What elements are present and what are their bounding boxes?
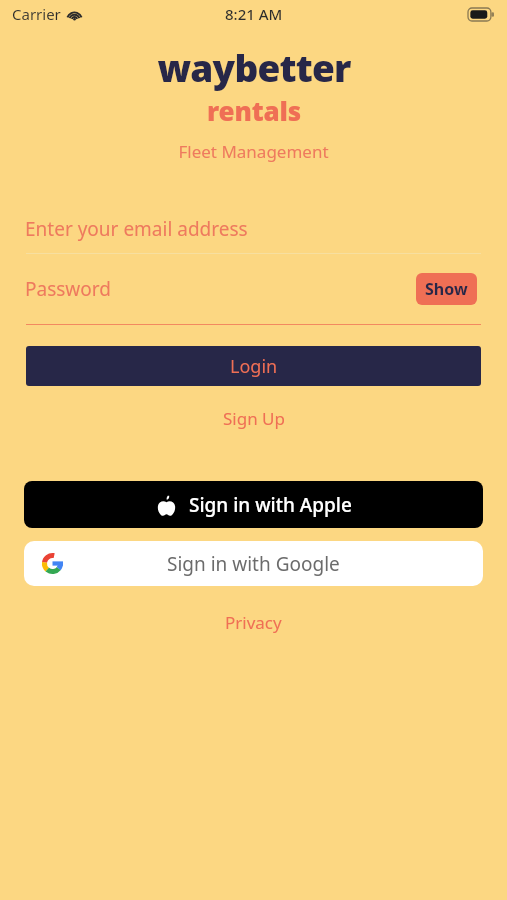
- staticText: Password: [25, 276, 111, 302]
- staticText: Fleet Management: [178, 140, 329, 163]
- button[interactable]: Sign in with Google: [24, 541, 483, 586]
- button[interactable]: Sign in with Apple: [24, 481, 483, 528]
- staticText: Sign in with Google: [167, 551, 340, 577]
- button[interactable]: Password: [0, 254, 507, 324]
- staticText: waybetter: [157, 42, 351, 92]
- button[interactable]: Login: [26, 346, 481, 386]
- button[interactable]: Enter your email address: [0, 205, 507, 253]
- staticText: rentals: [207, 93, 301, 128]
- staticText: Carrier: [12, 4, 61, 24]
- staticText: Enter your email address: [25, 216, 248, 242]
- staticText: Privacy: [225, 611, 282, 634]
- staticText: Show: [425, 278, 468, 300]
- button[interactable]: Show: [416, 273, 477, 305]
- button[interactable]: Sign Up: [0, 404, 507, 433]
- staticText: Login: [230, 354, 278, 379]
- staticText: Sign Up: [223, 407, 285, 430]
- staticText: Sign in with Apple: [189, 492, 352, 518]
- staticText: 8:21 AM: [225, 4, 283, 24]
- button[interactable]: Privacy: [0, 608, 507, 637]
